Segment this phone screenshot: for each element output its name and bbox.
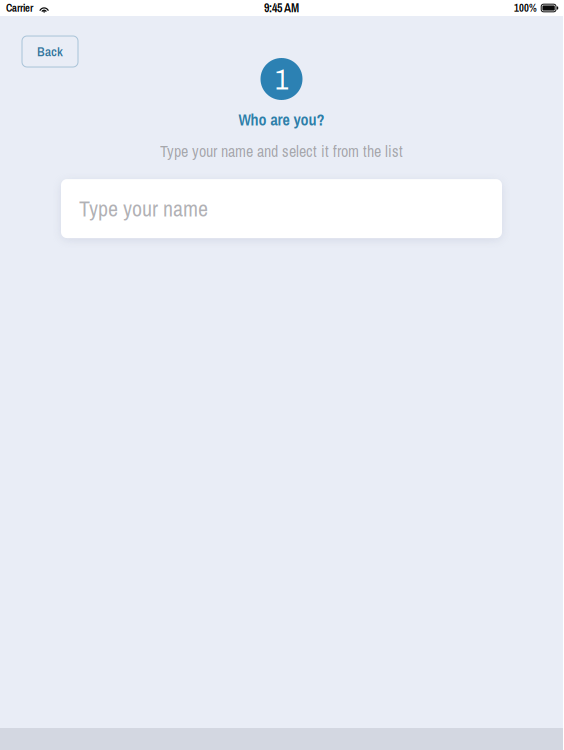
staticText: Type your name and select it from the li… (160, 141, 403, 162)
button[interactable]: Back (22, 36, 78, 67)
staticText: Back (37, 42, 63, 60)
staticText: Carrier (6, 1, 33, 15)
staticText: Who are you? (238, 109, 324, 131)
staticText: Type your name (79, 194, 208, 223)
staticText: 100% (514, 1, 537, 15)
staticText: 1 (275, 59, 288, 99)
staticText: 9:45 AM (264, 0, 299, 16)
